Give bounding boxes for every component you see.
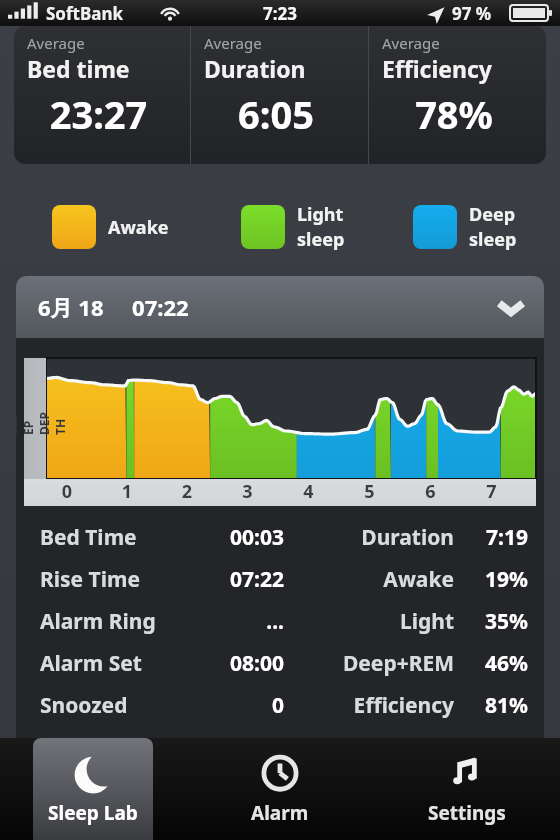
staticText: Duration — [204, 53, 306, 84]
staticText: Efficiency — [284, 691, 454, 720]
button[interactable]: Alarm Ring — [16, 600, 544, 642]
staticText: Settings — [428, 800, 506, 826]
staticText: ... — [176, 607, 284, 636]
button[interactable]: Average — [369, 26, 546, 164]
staticText: SoftBank — [46, 2, 124, 25]
button[interactable]: Sleep Lab — [33, 738, 153, 840]
button[interactable]: Average — [191, 26, 368, 164]
staticText: Rise Time — [40, 565, 176, 594]
other: Alarm — [257, 752, 303, 798]
other: Sleep Lab — [70, 752, 116, 798]
button[interactable]: Settings — [407, 738, 527, 840]
staticText: Average — [382, 33, 440, 53]
staticText: 4 — [278, 479, 339, 504]
staticText: Sleep Lab — [48, 800, 138, 826]
staticText: 1 — [97, 479, 157, 504]
button[interactable]: Deep — [413, 202, 517, 252]
staticText: 3 — [217, 479, 278, 504]
staticText: Snoozed — [40, 691, 176, 720]
staticText: Average — [27, 33, 85, 53]
staticText: 6 — [400, 479, 461, 504]
staticText: 81% — [466, 691, 528, 720]
staticText: 6:05 — [194, 88, 358, 140]
button[interactable]: Bed Time — [16, 516, 544, 558]
staticText: Alarm — [251, 800, 309, 826]
button[interactable]: Alarm Set — [16, 642, 544, 684]
staticText: 2 — [157, 479, 217, 504]
staticText: Deep — [469, 202, 516, 227]
other: Collapse entry — [490, 286, 532, 328]
button[interactable]: SLEEP DEPTH — [24, 358, 536, 506]
staticText: Efficiency — [382, 53, 492, 84]
staticText: 7:19 — [466, 523, 528, 552]
staticText: Light — [297, 202, 344, 227]
staticText: 6月 18 07:22 — [38, 292, 189, 322]
other: Settings — [444, 752, 490, 798]
staticText: 23:27 — [17, 88, 180, 140]
staticText: Average — [204, 33, 262, 53]
staticText: Light — [284, 607, 454, 636]
button[interactable]: Awake — [52, 205, 169, 249]
button[interactable]: Rise Time — [16, 558, 544, 600]
button[interactable]: Snoozed — [16, 684, 544, 726]
staticText: 07:22 — [176, 565, 284, 594]
staticText: Bed Time — [40, 523, 176, 552]
staticText: 7:23 — [0, 2, 560, 25]
staticText: Awake — [284, 565, 454, 594]
staticText: sleep — [469, 227, 517, 252]
staticText: 7 — [461, 479, 522, 504]
staticText: sleep — [297, 227, 345, 252]
staticText: 0 — [176, 691, 284, 720]
staticText: 0 — [37, 479, 97, 504]
staticText: Alarm Set — [40, 649, 176, 678]
button[interactable]: Average — [14, 26, 190, 164]
button[interactable]: Alarm — [220, 738, 340, 840]
staticText: SLEEP DEPTH — [16, 411, 68, 435]
staticText: 5 — [339, 479, 400, 504]
button[interactable]: Light — [241, 202, 345, 252]
staticText: 08:00 — [176, 649, 284, 678]
staticText: Alarm Ring — [40, 607, 176, 636]
staticText: Deep+REM — [284, 649, 454, 678]
staticText: 46% — [466, 649, 528, 678]
staticText: Bed time — [27, 53, 130, 84]
staticText: 00:03 — [176, 523, 284, 552]
staticText: 35% — [466, 607, 528, 636]
staticText: 97 % — [452, 2, 492, 25]
staticText: 78% — [372, 88, 536, 140]
staticText: 19% — [466, 565, 528, 594]
button[interactable]: 6月 18 07:22 — [16, 276, 544, 338]
staticText: Duration — [284, 523, 454, 552]
staticText: Awake — [108, 215, 169, 240]
